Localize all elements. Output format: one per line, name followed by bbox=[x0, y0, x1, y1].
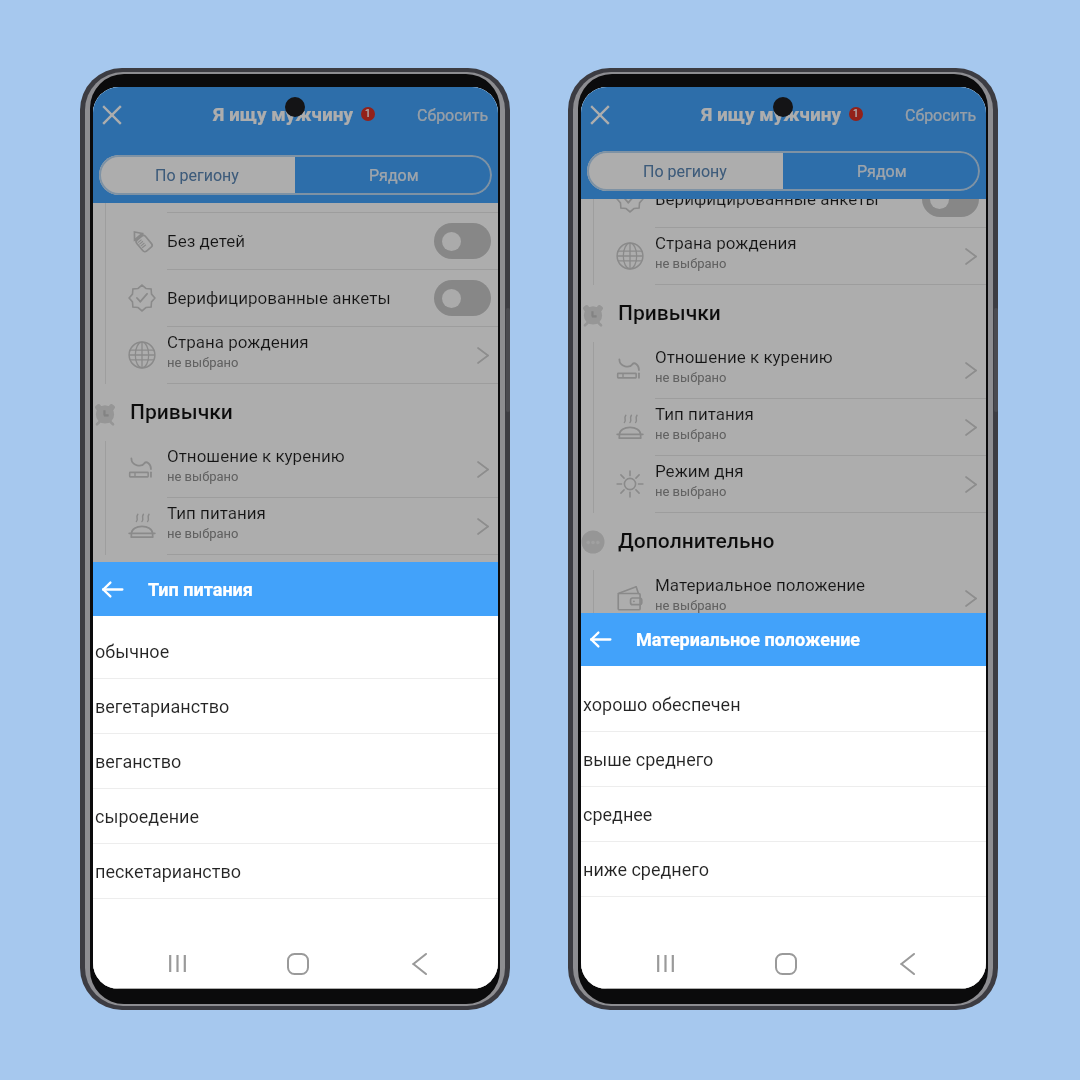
button[interactable]: пескетарианство bbox=[93, 844, 498, 898]
staticText: выше среднего bbox=[583, 749, 714, 770]
button[interactable]: Верифицированные анкеты bbox=[93, 270, 498, 326]
staticText: Верифицированные анкеты bbox=[167, 288, 391, 308]
button[interactable]: Страна рождения bbox=[581, 228, 986, 284]
button[interactable]: Верифицированные анкеты bbox=[581, 171, 986, 227]
staticText: не выбрано bbox=[655, 598, 727, 613]
button[interactable]: выше среднего bbox=[581, 732, 986, 786]
button[interactable]: Отношение к курению bbox=[581, 342, 986, 398]
staticText: Тип питания bbox=[167, 503, 266, 523]
button[interactable]: Отношение к курению bbox=[93, 441, 498, 497]
other: Назад bbox=[581, 613, 636, 666]
button[interactable]: По региону bbox=[587, 151, 783, 191]
button[interactable]: Назад bbox=[396, 941, 441, 986]
button[interactable]: Назад bbox=[93, 562, 498, 616]
button[interactable]: Сбросить bbox=[896, 93, 986, 137]
button[interactable]: веганство bbox=[93, 734, 498, 788]
button[interactable]: Домой bbox=[763, 941, 808, 986]
staticText: Рядом bbox=[857, 162, 907, 181]
staticText: сыроедение bbox=[95, 806, 200, 827]
staticText: Сбросить bbox=[905, 106, 977, 125]
staticText: Привычки bbox=[130, 400, 233, 425]
staticText: Отношение к курению bbox=[655, 347, 833, 367]
staticText: Сбросить bbox=[417, 106, 489, 125]
staticText: Дополнительно bbox=[618, 529, 775, 554]
staticText: По региону bbox=[155, 166, 239, 185]
staticText: не выбрано bbox=[655, 427, 727, 442]
button[interactable]: Тип питания bbox=[581, 399, 986, 455]
staticText: Я ищу мужчину bbox=[213, 103, 354, 125]
staticText: не выбрано bbox=[655, 256, 727, 271]
staticText: хорошо обеспечен bbox=[583, 694, 741, 715]
staticText: Верифицированные анкеты bbox=[655, 189, 879, 209]
staticText: Страна рождения bbox=[655, 233, 797, 253]
staticText: Рядом bbox=[369, 166, 419, 185]
staticText: пескетарианство bbox=[95, 861, 242, 882]
staticText: Тип питания bbox=[655, 404, 754, 424]
staticText: среднее bbox=[583, 804, 653, 825]
staticText: веганство bbox=[95, 751, 182, 772]
staticText: ниже среднего bbox=[583, 859, 709, 880]
button[interactable]: Рядом bbox=[295, 155, 492, 195]
button[interactable]: Рядом bbox=[783, 151, 980, 191]
staticText: Страна рождения bbox=[167, 332, 309, 352]
button[interactable]: Тип питания bbox=[93, 498, 498, 554]
other: Назад bbox=[93, 562, 148, 616]
button[interactable]: Недавние приложения bbox=[155, 941, 200, 986]
button[interactable]: Режим дня bbox=[581, 456, 986, 512]
button[interactable]: Без детей bbox=[93, 213, 498, 269]
button[interactable]: ниже среднего bbox=[581, 842, 986, 896]
button[interactable]: обычное bbox=[93, 624, 498, 678]
button[interactable]: Назад bbox=[884, 941, 929, 986]
staticText: Режим дня bbox=[655, 461, 744, 481]
button[interactable]: Назад bbox=[581, 613, 986, 666]
button[interactable]: Недавние приложения bbox=[643, 941, 688, 986]
button[interactable]: Материальное положение bbox=[581, 570, 986, 626]
staticText: Материальное положение bbox=[636, 629, 861, 650]
button[interactable]: Домой bbox=[275, 941, 320, 986]
button[interactable]: сыроедение bbox=[93, 789, 498, 843]
staticText: не выбрано bbox=[167, 526, 239, 541]
button[interactable]: Страна рождения bbox=[93, 327, 498, 383]
button[interactable]: вегетарианство bbox=[93, 679, 498, 733]
staticText: По региону bbox=[643, 162, 727, 181]
staticText: Тип питания bbox=[148, 579, 253, 600]
button[interactable]: По региону bbox=[99, 155, 295, 195]
staticText: Материальное положение bbox=[655, 575, 866, 595]
staticText: Я ищу мужчину bbox=[701, 103, 842, 125]
staticText: не выбрано bbox=[655, 484, 727, 499]
staticText: не выбрано bbox=[167, 469, 239, 484]
staticText: Отношение к курению bbox=[167, 446, 345, 466]
staticText: вегетарианство bbox=[95, 696, 230, 717]
staticText: не выбрано bbox=[167, 355, 239, 370]
staticText: Привычки bbox=[618, 301, 721, 326]
staticText: 1 bbox=[853, 108, 859, 120]
button[interactable]: Сбросить bbox=[408, 93, 498, 137]
staticText: 1 bbox=[365, 108, 371, 120]
button[interactable]: хорошо обеспечен bbox=[581, 677, 986, 731]
staticText: не выбрано bbox=[655, 370, 727, 385]
staticText: обычное bbox=[95, 641, 170, 662]
staticText: Без детей bbox=[167, 231, 246, 251]
button[interactable]: среднее bbox=[581, 787, 986, 841]
button[interactable]: Закрыть bbox=[581, 93, 622, 137]
button[interactable]: Закрыть bbox=[93, 93, 134, 137]
